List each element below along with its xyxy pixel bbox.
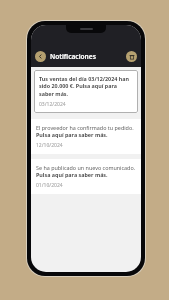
button[interactable]: Tus ventas del día 03/12/2024 han sido 2… bbox=[34, 70, 138, 113]
staticText: 01/10/2024 bbox=[36, 182, 63, 189]
staticText: Tus ventas del día 03/12/2024 han sido 2… bbox=[39, 75, 133, 98]
staticText: El proveedor ha confirmado tu pedido. Pu… bbox=[36, 124, 136, 139]
staticText: 12/10/2024 bbox=[36, 142, 63, 149]
button[interactable]: El proveedor ha confirmado tu pedido. Pu… bbox=[31, 119, 141, 154]
staticText: Se ha publicado un nuevo comunicado. Pul… bbox=[36, 164, 136, 179]
staticText: 03/12/2024 bbox=[39, 101, 66, 108]
button[interactable]: Se ha publicado un nuevo comunicado. Pul… bbox=[31, 159, 141, 194]
staticText: Notificaciones bbox=[50, 52, 96, 61]
button[interactable]: Delete notifications bbox=[126, 51, 137, 62]
button[interactable]: Back bbox=[35, 51, 46, 62]
